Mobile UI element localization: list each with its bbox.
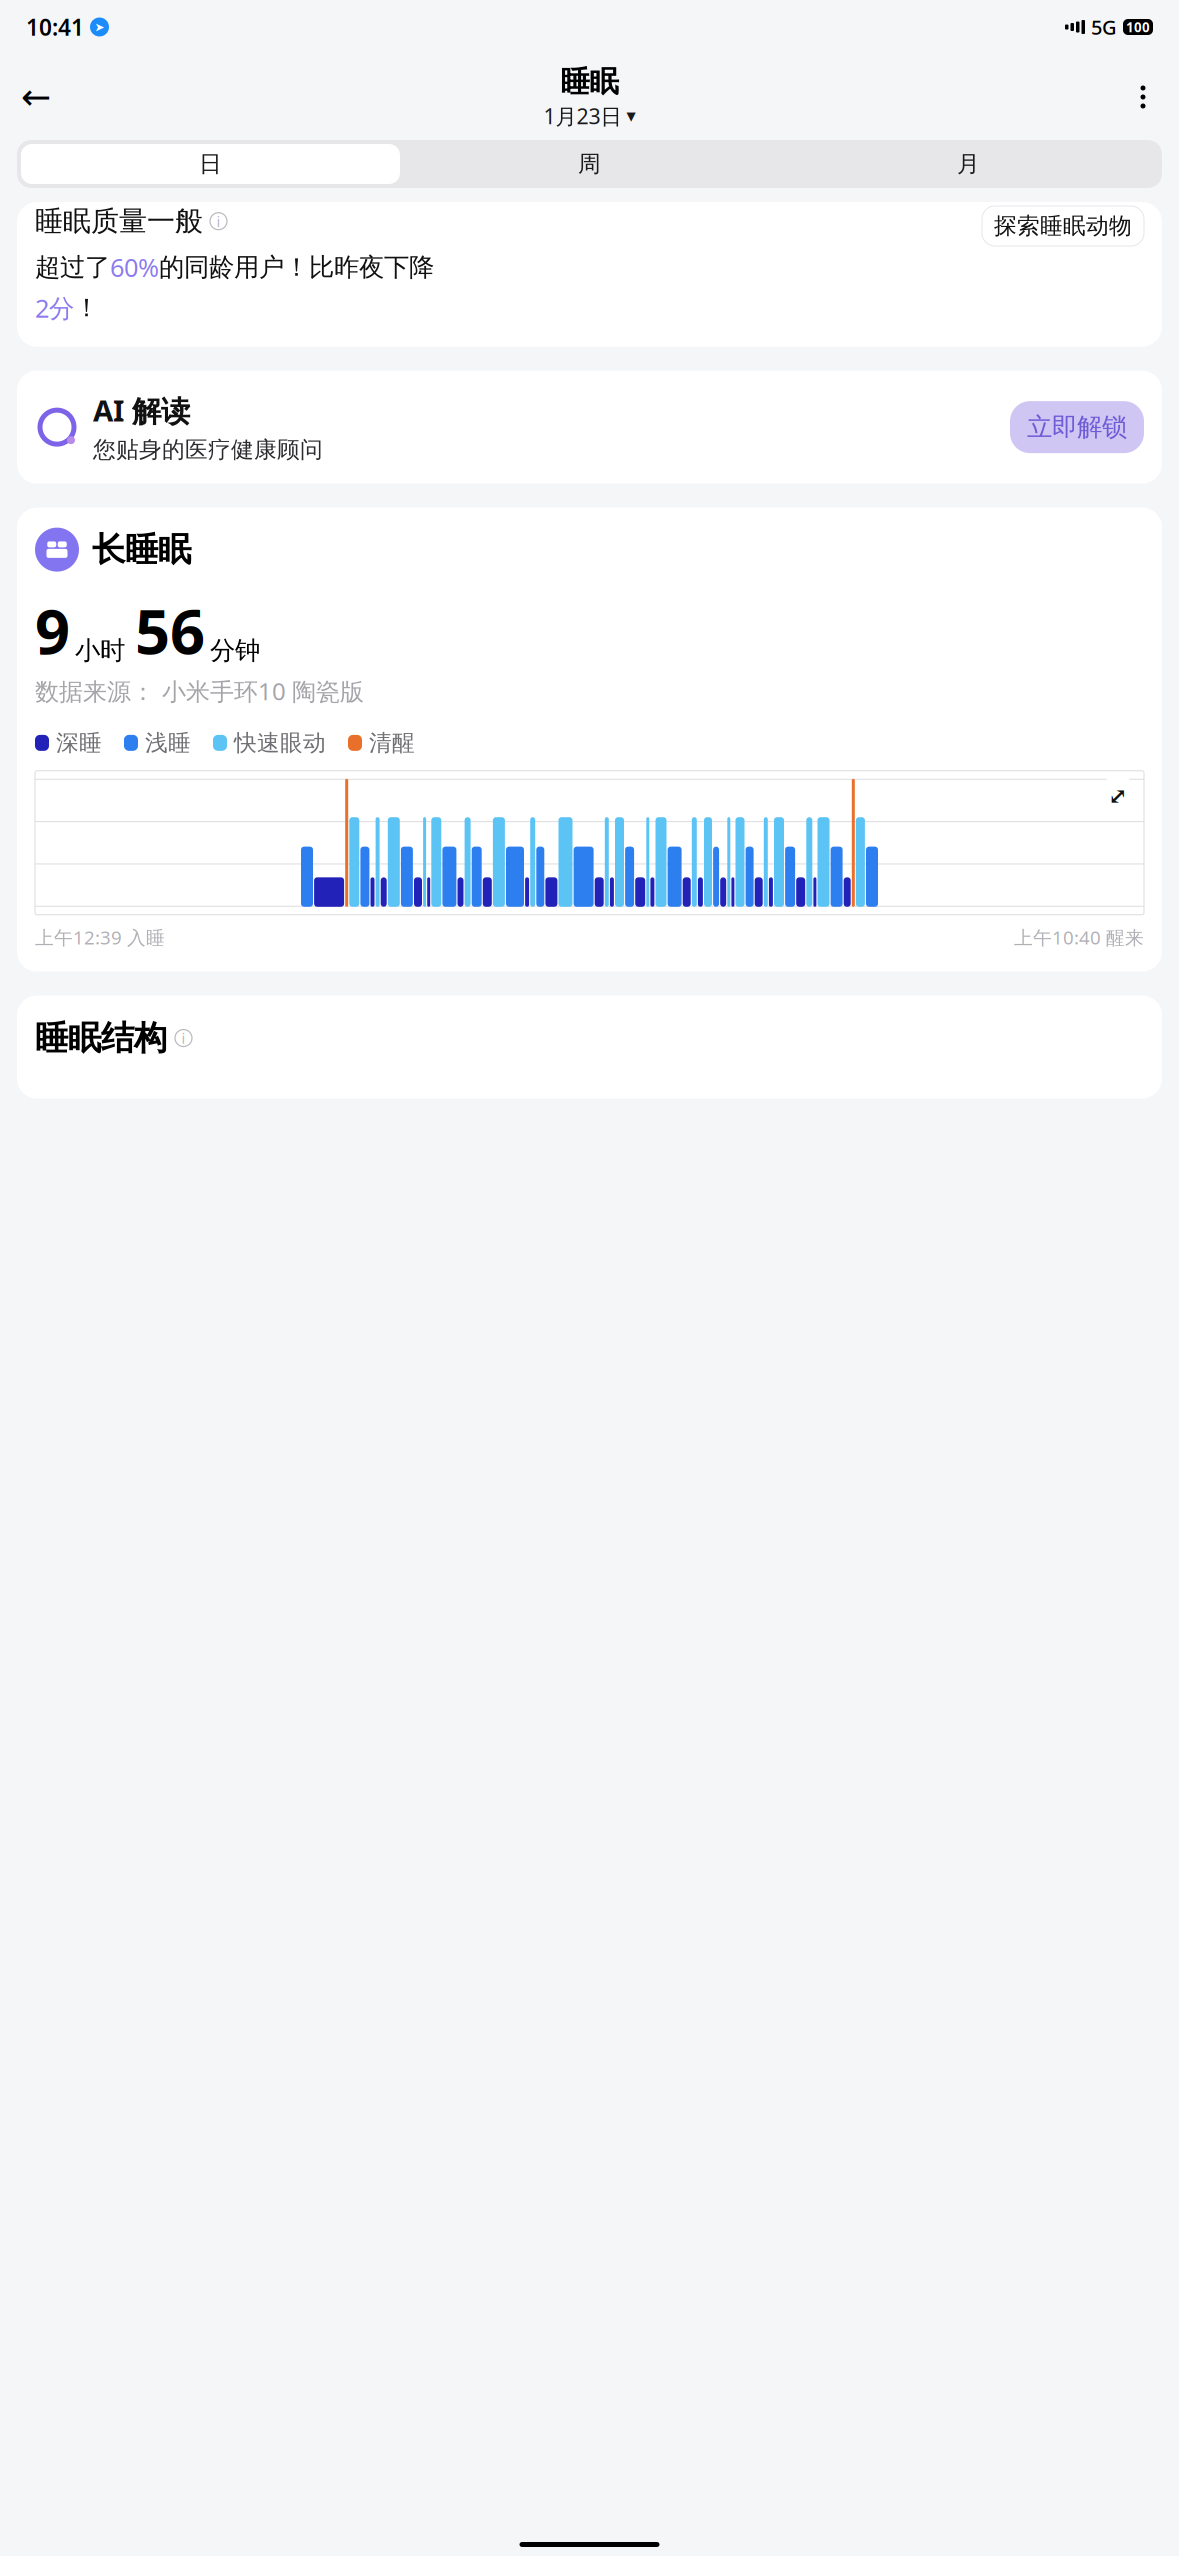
staticText: 56 <box>135 590 205 671</box>
staticText: 小时 <box>75 635 125 666</box>
button[interactable]: 周 <box>400 144 779 184</box>
staticText: 您贴身的医疗健康顾问 <box>93 436 323 464</box>
staticText: 睡眠结构 <box>35 1018 167 1058</box>
staticText: i <box>216 211 220 231</box>
staticText: 9 <box>35 590 70 671</box>
staticText: 立即解锁 <box>1027 412 1127 443</box>
button[interactable]: AI 解读 <box>0 371 1179 484</box>
staticText: 5G <box>1091 14 1117 40</box>
staticText: ▼ <box>626 109 635 123</box>
staticText: 1月23日 <box>543 102 621 130</box>
staticText: 数据来源： 小米手环10 陶瓷版 <box>35 675 364 707</box>
staticText: 快速眼动 <box>234 729 326 757</box>
staticText: ← <box>21 77 51 117</box>
staticText: 月 <box>957 150 980 178</box>
staticText: 上午10:40 醒来 <box>1014 925 1144 950</box>
button[interactable]: 全屏查看 <box>1098 776 1138 816</box>
staticText: 长睡眠 <box>92 529 191 570</box>
button[interactable]: 返回 <box>14 75 58 119</box>
staticText: ➤ <box>94 20 104 34</box>
staticText: i <box>181 1028 185 1048</box>
staticText: 浅睡 <box>145 729 191 757</box>
staticText: 清醒 <box>369 729 415 757</box>
staticText: 60% <box>110 250 159 284</box>
button[interactable]: 日 <box>21 144 400 184</box>
button[interactable]: 探索睡眠动物 <box>982 206 1144 246</box>
staticText: 睡眠 <box>560 64 618 100</box>
staticText: 2分 <box>35 291 74 325</box>
staticText: 上午12:39 入睡 <box>35 925 165 950</box>
button[interactable]: 1月23日 <box>543 102 635 130</box>
staticText: ⤢ <box>1108 783 1127 809</box>
staticText: 探索睡眠动物 <box>994 212 1132 240</box>
staticText: 100 <box>1126 18 1150 36</box>
staticText: 周 <box>578 150 601 178</box>
staticText: ！ <box>74 292 99 323</box>
staticText: AI 解读 <box>93 391 190 430</box>
staticText: 超过了 <box>35 252 110 283</box>
staticText: 10:41 <box>26 12 84 42</box>
button[interactable]: 月 <box>779 144 1158 184</box>
staticText: 的同龄用户！比昨夜下降 <box>159 252 434 283</box>
button[interactable]: 更多选项 <box>1121 75 1165 119</box>
staticText: 睡眠质量一般 <box>35 204 203 238</box>
staticText: 日 <box>199 150 222 178</box>
staticText: 分钟 <box>210 635 260 666</box>
staticText: 深睡 <box>56 729 102 757</box>
